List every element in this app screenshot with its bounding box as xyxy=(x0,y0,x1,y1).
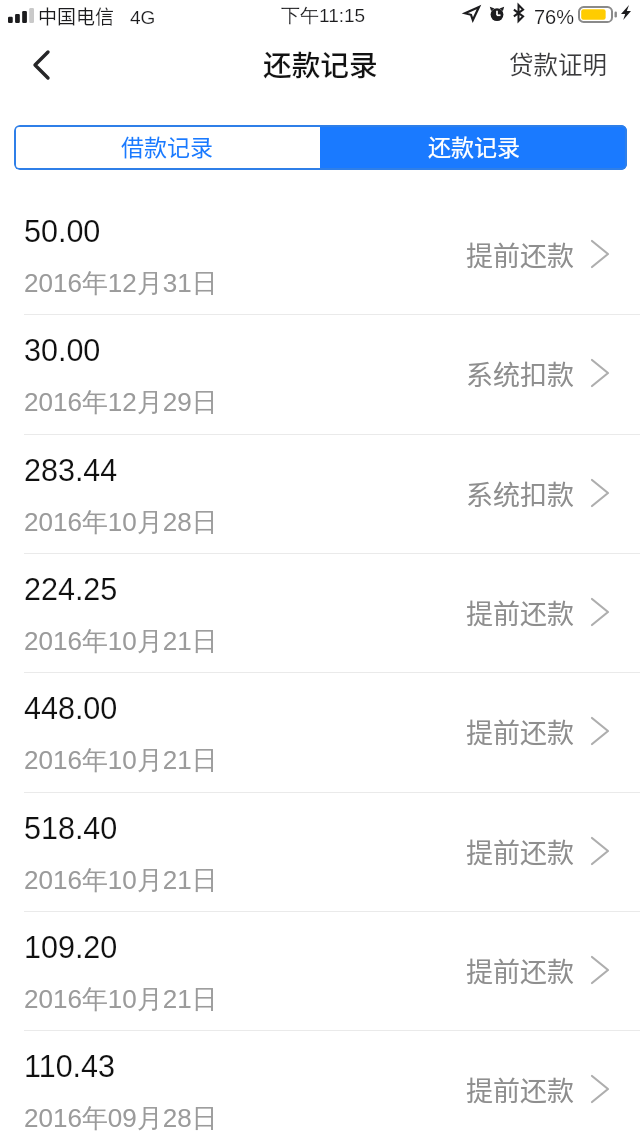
staticText: 还款记录 xyxy=(263,43,378,85)
staticText: 2016年10月21日 xyxy=(24,983,218,1016)
button[interactable]: Back xyxy=(0,32,82,104)
staticText: 贷款证明 xyxy=(509,46,607,81)
staticText: 50.00 xyxy=(24,214,101,248)
button[interactable]: 224.25 xyxy=(0,554,640,673)
staticText: 借款记录 xyxy=(121,129,213,162)
staticText: 2016年10月28日 xyxy=(24,506,218,539)
staticText: 283.44 xyxy=(24,453,118,487)
staticText: 109.20 xyxy=(24,930,118,964)
staticText: 提前还款 xyxy=(466,1070,574,1109)
staticText: 4G xyxy=(130,7,156,28)
staticText: 提前还款 xyxy=(466,593,574,632)
staticText: 2016年09月28日 xyxy=(24,1102,218,1135)
button[interactable]: 109.20 xyxy=(0,912,640,1031)
staticText: 518.40 xyxy=(24,811,118,845)
button[interactable]: 518.40 xyxy=(0,793,640,912)
staticText: 76% xyxy=(534,6,575,28)
button[interactable]: 283.44 xyxy=(0,435,640,554)
staticText: 提前还款 xyxy=(466,951,574,990)
staticText: 下午11:15 xyxy=(281,4,366,28)
staticText: 提前还款 xyxy=(466,712,574,751)
button[interactable]: 448.00 xyxy=(0,673,640,793)
staticText: 30.00 xyxy=(24,333,101,367)
button[interactable]: 30.00 xyxy=(0,315,640,435)
staticText: 2016年10月21日 xyxy=(24,625,218,658)
staticText: 2016年12月29日 xyxy=(24,386,218,419)
staticText: 还款记录 xyxy=(428,129,520,162)
button[interactable]: 110.43 xyxy=(0,1031,640,1138)
staticText: 224.25 xyxy=(24,572,118,606)
staticText: 提前还款 xyxy=(466,235,574,274)
staticText: 系统扣款 xyxy=(466,354,574,393)
staticText: 2016年12月31日 xyxy=(24,267,218,300)
button[interactable]: 还款记录 xyxy=(320,125,627,170)
staticText: 提前还款 xyxy=(466,832,574,871)
staticText: 448.00 xyxy=(24,691,118,725)
button[interactable]: 50.00 xyxy=(0,196,640,315)
staticText: 中国电信 xyxy=(38,2,115,30)
staticText: 系统扣款 xyxy=(466,474,574,513)
button[interactable]: 借款记录 xyxy=(14,125,320,170)
button[interactable]: 贷款证明 xyxy=(493,39,640,98)
staticText: 2016年10月21日 xyxy=(24,864,218,897)
staticText: 110.43 xyxy=(24,1049,116,1083)
staticText: 2016年10月21日 xyxy=(24,744,218,777)
